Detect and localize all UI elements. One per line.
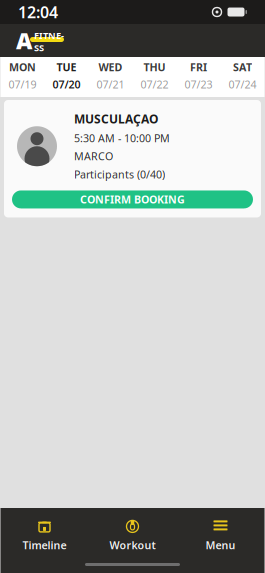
button[interactable]: WED bbox=[88, 57, 132, 97]
staticText: 07/19 bbox=[8, 77, 36, 91]
staticText: 07/20 bbox=[52, 77, 80, 91]
staticText: 5:30 AM - 10:00 PM bbox=[74, 131, 170, 145]
button[interactable]: THU bbox=[132, 57, 176, 97]
staticText: 12:04 bbox=[18, 1, 58, 23]
staticText: 07/24 bbox=[228, 77, 256, 91]
staticText: TUE bbox=[56, 60, 76, 74]
button[interactable]: SAT bbox=[220, 57, 264, 97]
staticText: MON bbox=[9, 60, 36, 74]
staticText: 07/23 bbox=[184, 77, 212, 91]
staticText: Menu bbox=[205, 538, 235, 552]
staticText: 07/21 bbox=[96, 77, 124, 91]
staticText: THU bbox=[143, 60, 165, 74]
staticText: MARCO bbox=[74, 149, 113, 163]
button[interactable]: MON bbox=[0, 57, 44, 97]
staticText: FITNESS bbox=[34, 29, 64, 54]
button[interactable]: TUE bbox=[44, 57, 88, 97]
button[interactable]: Timeline bbox=[0, 516, 88, 554]
staticText: 07/22 bbox=[140, 77, 168, 91]
button[interactable]: CONFIRM BOOKING bbox=[4, 190, 261, 208]
staticText: Timeline bbox=[22, 538, 66, 552]
staticText: Workout bbox=[109, 538, 155, 552]
button[interactable]: Workout bbox=[88, 516, 176, 554]
staticText: SAT bbox=[233, 60, 252, 74]
button[interactable]: Menu bbox=[176, 516, 264, 554]
staticText: FRI bbox=[190, 60, 207, 74]
staticText: WED bbox=[98, 60, 122, 74]
staticText: MUSCULAÇAO bbox=[74, 111, 158, 127]
staticText: Participants (0/40) bbox=[74, 167, 165, 181]
staticText: CONFIRM BOOKING bbox=[80, 192, 185, 207]
staticText: A bbox=[16, 25, 32, 55]
button[interactable]: FRI bbox=[176, 57, 220, 97]
